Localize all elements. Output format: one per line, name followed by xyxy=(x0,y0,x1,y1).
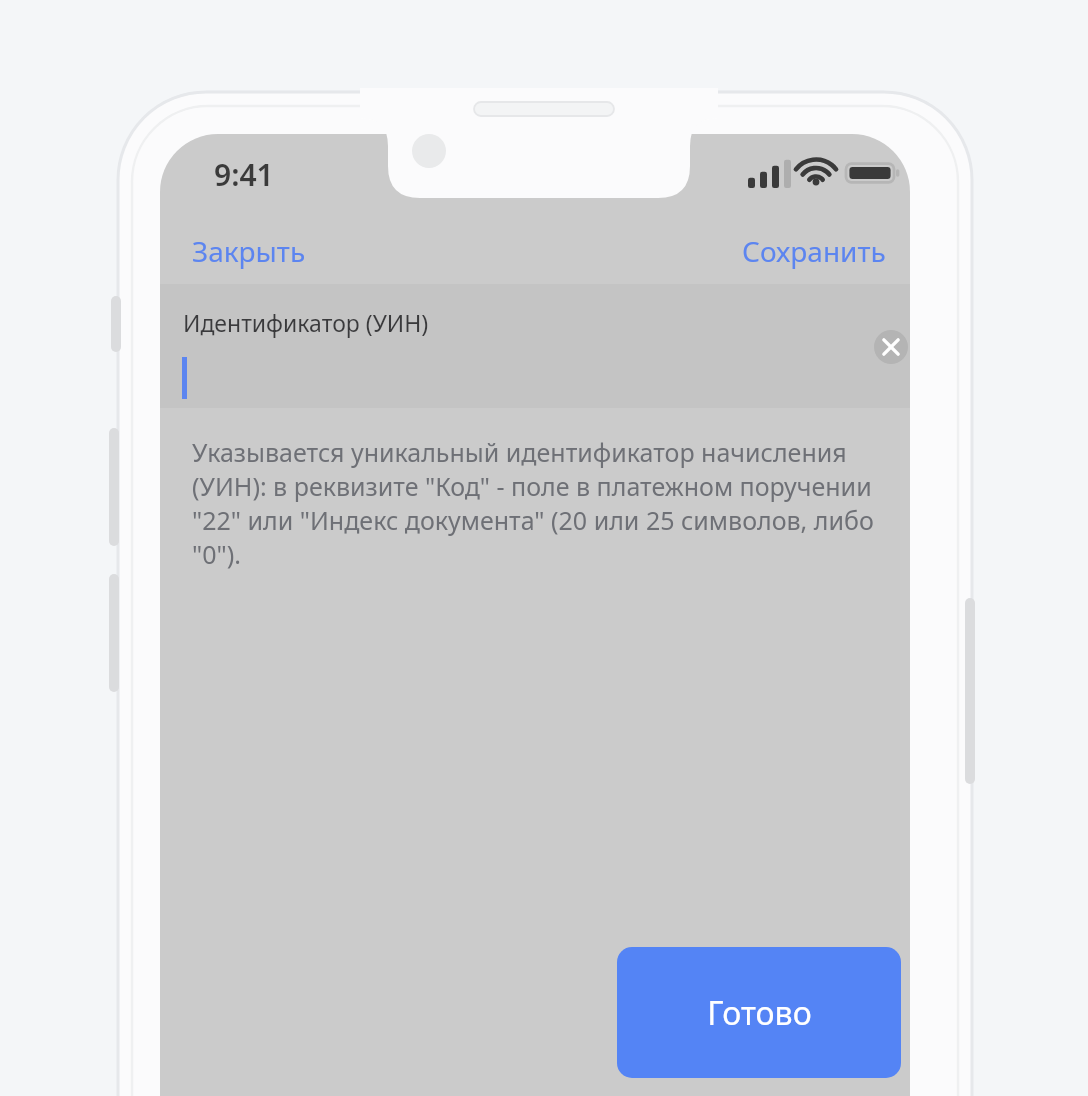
button[interactable]: Закрыть xyxy=(160,222,324,280)
staticText: Закрыть xyxy=(192,232,306,270)
button[interactable]: Готово xyxy=(617,947,901,1078)
staticText: Идентификатор (УИН) xyxy=(183,307,429,338)
button[interactable]: Сохранить xyxy=(724,222,910,280)
staticText: Сохранить xyxy=(742,232,886,270)
button[interactable]: Очистить поле xyxy=(874,330,908,364)
staticText: Указывается уникальный идентификатор нач… xyxy=(192,435,886,571)
staticText: 9:41 xyxy=(214,154,274,195)
button[interactable]: Идентификатор (УИН) xyxy=(160,284,910,408)
staticText: Готово xyxy=(707,991,812,1035)
